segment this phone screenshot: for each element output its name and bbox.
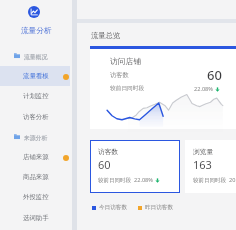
staticText: 较前日同时段 — [98, 177, 131, 184]
staticText: 店铺来源 — [23, 153, 49, 161]
button[interactable]: 访客数 — [90, 140, 180, 193]
staticText: 较前日同时段 — [110, 85, 145, 92]
staticText: 计划监控 — [23, 92, 49, 100]
button[interactable]: 浏览量 — [185, 140, 236, 193]
staticText: 访客数 — [98, 147, 119, 156]
staticText: 来源分析 — [24, 134, 48, 141]
staticText: 22.08% — [194, 85, 213, 93]
button[interactable]: 商品来源 — [0, 167, 72, 187]
staticText: 22.08% — [134, 176, 153, 184]
button[interactable]: 计划监控 — [0, 86, 72, 106]
button[interactable]: 店铺来源 — [0, 147, 72, 167]
staticText: 昨日访客数 — [145, 204, 173, 211]
staticText: 访问店铺 — [110, 56, 142, 66]
staticText: 外投监控 — [23, 193, 49, 201]
staticText: 流量概况 — [24, 53, 48, 60]
staticText: 选词助手 — [23, 214, 49, 222]
staticText: 流量看板 — [23, 72, 49, 80]
button[interactable]: 外投监控 — [0, 187, 72, 207]
button[interactable]: 流量分析 — [28, 6, 40, 18]
staticText: 20.8 — [229, 176, 236, 184]
staticText: 流量分析 — [21, 26, 52, 36]
staticText: 今日访客数 — [99, 204, 127, 211]
staticText: 60 — [98, 157, 111, 172]
staticText: 浏览量 — [193, 147, 214, 156]
button[interactable]: 访客分析 — [0, 107, 72, 127]
staticText: 较前日同时段 — [193, 177, 226, 184]
staticText: 60 — [207, 66, 222, 84]
button[interactable]: 选词助手 — [0, 208, 72, 228]
staticText: 流量总览 — [91, 31, 121, 40]
staticText: 访客数 — [110, 71, 129, 79]
button[interactable]: 流量看板 — [0, 66, 72, 86]
button[interactable]: 访问店铺 — [90, 46, 236, 129]
staticText: 访客分析 — [23, 113, 49, 121]
staticText: 163 — [193, 157, 212, 172]
staticText: 商品来源 — [23, 173, 49, 181]
